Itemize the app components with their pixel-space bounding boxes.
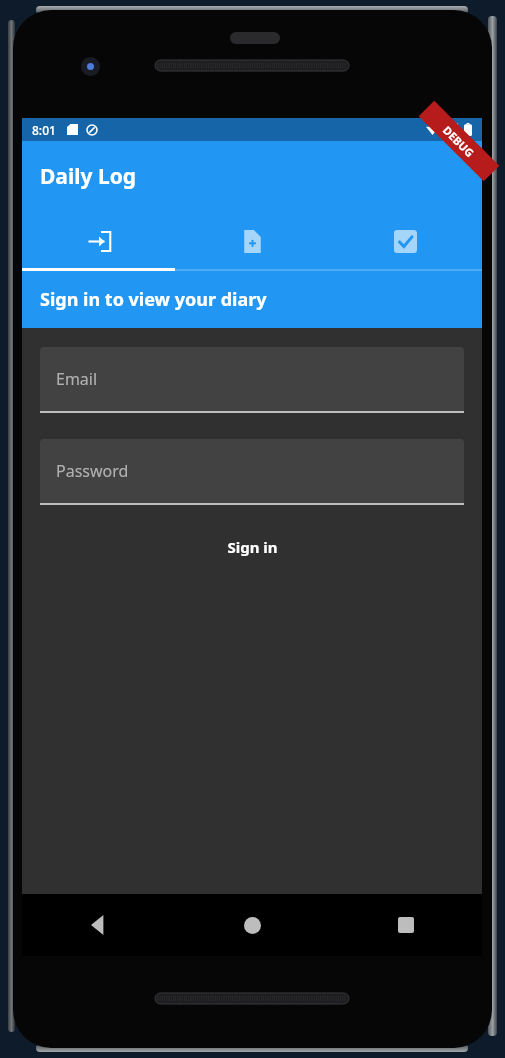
staticText: 8:01 bbox=[32, 122, 56, 138]
button[interactable]: Email bbox=[40, 347, 464, 413]
button[interactable]: Recent apps bbox=[329, 894, 482, 956]
staticText: Password bbox=[56, 460, 129, 482]
staticText: Email bbox=[56, 368, 98, 390]
staticText: Sign in bbox=[227, 537, 278, 557]
staticText: Daily Log bbox=[40, 162, 137, 191]
button[interactable]: New entry bbox=[176, 211, 329, 271]
button[interactable]: Home bbox=[176, 894, 329, 956]
staticText: Sign in to view your diary bbox=[40, 287, 267, 312]
button[interactable]: Tasks bbox=[329, 211, 482, 271]
staticText: DEBUG bbox=[440, 123, 477, 160]
button[interactable]: Sign in bbox=[22, 211, 176, 271]
button[interactable]: Back bbox=[22, 894, 176, 956]
button[interactable]: Sign in bbox=[40, 525, 464, 569]
button[interactable]: Password bbox=[40, 439, 464, 505]
